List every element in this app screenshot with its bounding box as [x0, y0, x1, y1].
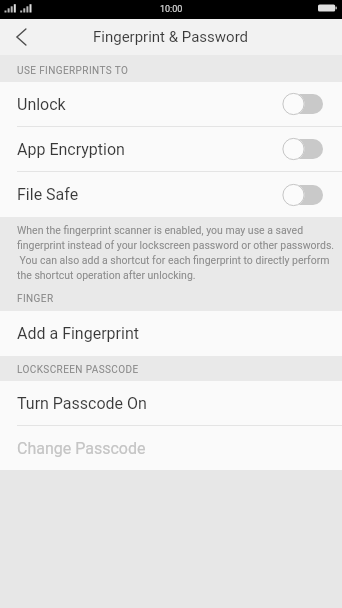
staticText: Turn Passcode On — [17, 394, 147, 413]
staticText: File Safe — [17, 185, 79, 204]
staticText: LOCKSCREEN PASSCODE — [17, 364, 139, 376]
staticText: Fingerprint & Password — [93, 28, 249, 46]
staticText: USE FINGERPRINTS TO — [17, 65, 129, 77]
staticText: App Encryption — [17, 140, 125, 159]
button[interactable] — [282, 93, 323, 115]
staticText: Add a Fingerprint — [17, 324, 139, 343]
button[interactable] — [282, 138, 323, 160]
button[interactable] — [0, 19, 40, 55]
button[interactable]: Turn Passcode On — [0, 381, 342, 425]
button[interactable] — [282, 184, 323, 206]
staticText: When the fingerprint scanner is enabled,… — [17, 224, 335, 282]
staticText: 10:00 — [160, 4, 183, 15]
button[interactable]: App Encryption — [0, 127, 342, 171]
button[interactable]: Change Passcode — [0, 426, 342, 470]
staticText: Change Passcode — [17, 439, 146, 458]
button[interactable]: Unlock — [0, 82, 342, 126]
staticText: FINGER — [17, 293, 54, 305]
button[interactable]: Add a Fingerprint — [0, 311, 342, 356]
staticText: Unlock — [17, 95, 66, 114]
button[interactable]: File Safe — [0, 172, 342, 217]
